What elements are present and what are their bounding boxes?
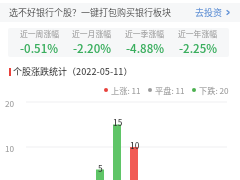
- button[interactable]: 个股涨跌统计（2022-05-11）: [9, 65, 133, 78]
- staticText: -0.51%: [20, 40, 58, 57]
- staticText: 20: [5, 97, 15, 109]
- staticText: 10: [130, 139, 140, 151]
- button[interactable]: 近一年涨幅: [171, 28, 224, 57]
- staticText: 上涨: 11: [111, 84, 141, 96]
- staticText: 选不好银行个股？一键打包购买银行板块: [9, 6, 172, 19]
- button[interactable]: 近一周涨幅: [13, 28, 65, 57]
- button[interactable]: 选不好银行个股？一键打包购买银行板块: [0, 3, 240, 22]
- staticText: 平盘: 11: [155, 84, 185, 96]
- button[interactable]: 下跌: 20: [192, 84, 229, 96]
- staticText: -2.20%: [73, 40, 111, 57]
- staticText: -2.25%: [179, 40, 217, 57]
- button[interactable]: 平盘: 11: [148, 84, 185, 96]
- button[interactable]: 上涨: 11: [104, 84, 141, 96]
- staticText: 去投资: [195, 6, 223, 19]
- staticText: -4.88%: [126, 40, 164, 57]
- button[interactable]: 近一月涨幅: [65, 28, 118, 57]
- staticText: 下跌: 20: [199, 84, 229, 96]
- staticText: 5: [98, 162, 103, 174]
- staticText: 近一年涨幅: [178, 28, 217, 39]
- staticText: 15: [113, 116, 123, 128]
- staticText: 近一月涨幅: [72, 28, 111, 39]
- staticText: 近一周涨幅: [20, 28, 59, 39]
- button[interactable]: 近一季涨幅: [118, 28, 171, 57]
- staticText: 10: [5, 142, 15, 154]
- staticText: 近一季涨幅: [125, 28, 164, 39]
- staticText: 个股涨跌统计（2022-05-11）: [13, 65, 133, 78]
